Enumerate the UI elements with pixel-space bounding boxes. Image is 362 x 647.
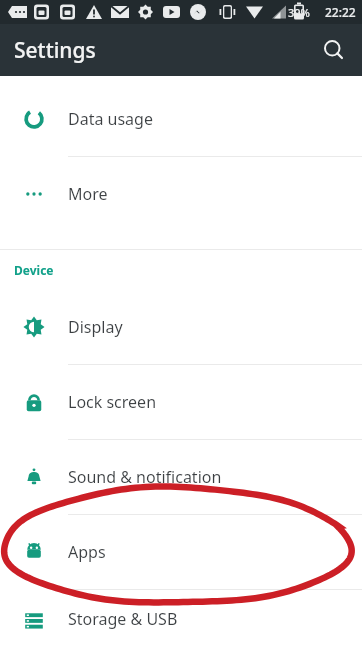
- button[interactable]: Storage & USB: [0, 590, 362, 647]
- staticText: More: [68, 183, 108, 205]
- button[interactable]: Display: [0, 290, 362, 364]
- button[interactable]: Apps: [0, 515, 362, 589]
- staticText: Display: [68, 316, 123, 338]
- button[interactable]: Sound & notification: [0, 440, 362, 514]
- staticText: Device: [14, 262, 54, 278]
- staticText: Sound & notification: [68, 466, 222, 488]
- button[interactable]: Data usage: [0, 82, 362, 156]
- staticText: Apps: [68, 541, 106, 563]
- staticText: Data usage: [68, 108, 153, 130]
- staticText: Storage & USB: [68, 608, 178, 630]
- staticText: 39%: [288, 5, 310, 20]
- staticText: Settings: [14, 36, 96, 65]
- staticText: 22:22: [325, 4, 356, 20]
- button[interactable]: Search: [314, 30, 354, 70]
- button[interactable]: More: [0, 157, 362, 231]
- staticText: Lock screen: [68, 391, 157, 413]
- button[interactable]: Lock screen: [0, 365, 362, 439]
